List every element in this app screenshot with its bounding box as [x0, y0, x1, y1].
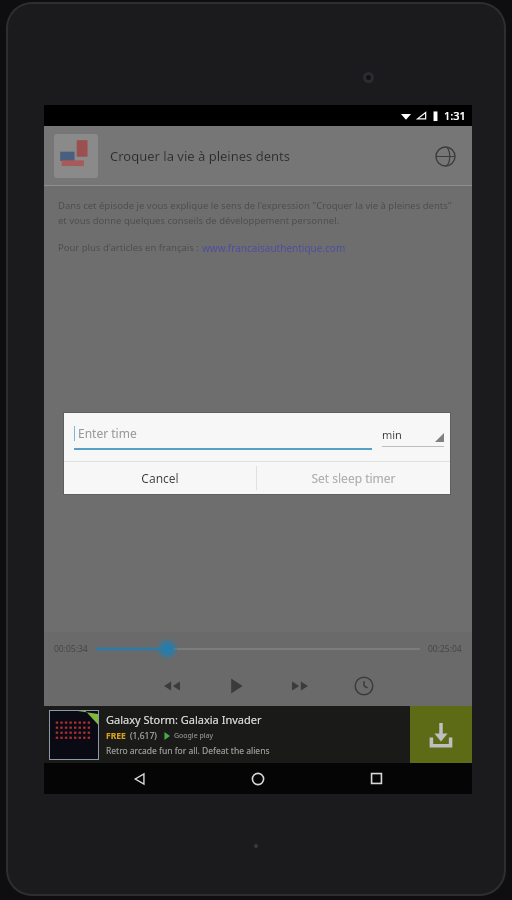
button[interactable]: Fast forward — [283, 669, 317, 703]
button[interactable]: Sleep timer — [347, 669, 381, 703]
button[interactable]: Install — [410, 706, 472, 763]
button[interactable]: Recent apps — [354, 763, 398, 794]
button[interactable]: Back — [118, 763, 162, 794]
staticText: FREE — [106, 730, 126, 742]
staticText: Cancel — [141, 470, 179, 486]
staticText: Google play — [174, 731, 214, 741]
button[interactable]: Cancel — [64, 462, 256, 494]
staticText: Set sleep timer — [311, 470, 396, 486]
button[interactable]: Play — [219, 669, 253, 703]
staticText: Galaxy Storm: Galaxia Invader — [106, 712, 262, 727]
staticText: (1,617) — [130, 730, 157, 742]
button[interactable]: Galaxy Storm: Galaxia Invader — [44, 706, 472, 763]
staticText: 00:25:04 — [428, 643, 462, 655]
button[interactable]: Set sleep timer — [257, 462, 450, 494]
staticText: 1:31 — [444, 108, 466, 123]
button[interactable]: Rewind — [155, 669, 189, 703]
staticText: Retro arcade fun for all. Defeat the ali… — [106, 745, 270, 757]
button[interactable]: Home — [236, 763, 280, 794]
staticText: 00:05:34 — [54, 643, 88, 655]
staticText: min — [382, 427, 402, 442]
staticText: Dans cet épisode je vous explique le sen… — [58, 199, 458, 227]
button[interactable]: Open website — [428, 139, 462, 173]
staticText: Pour plus d'articles en français : — [58, 241, 202, 254]
staticText: Croquer la vie à pleines dents — [110, 147, 428, 165]
button[interactable]: min — [382, 422, 444, 452]
staticText: Enter time — [78, 425, 137, 441]
button[interactable]: www.francaisauthentique.com — [202, 241, 346, 255]
button[interactable]: Enter time — [74, 413, 372, 461]
button[interactable] — [96, 637, 420, 661]
